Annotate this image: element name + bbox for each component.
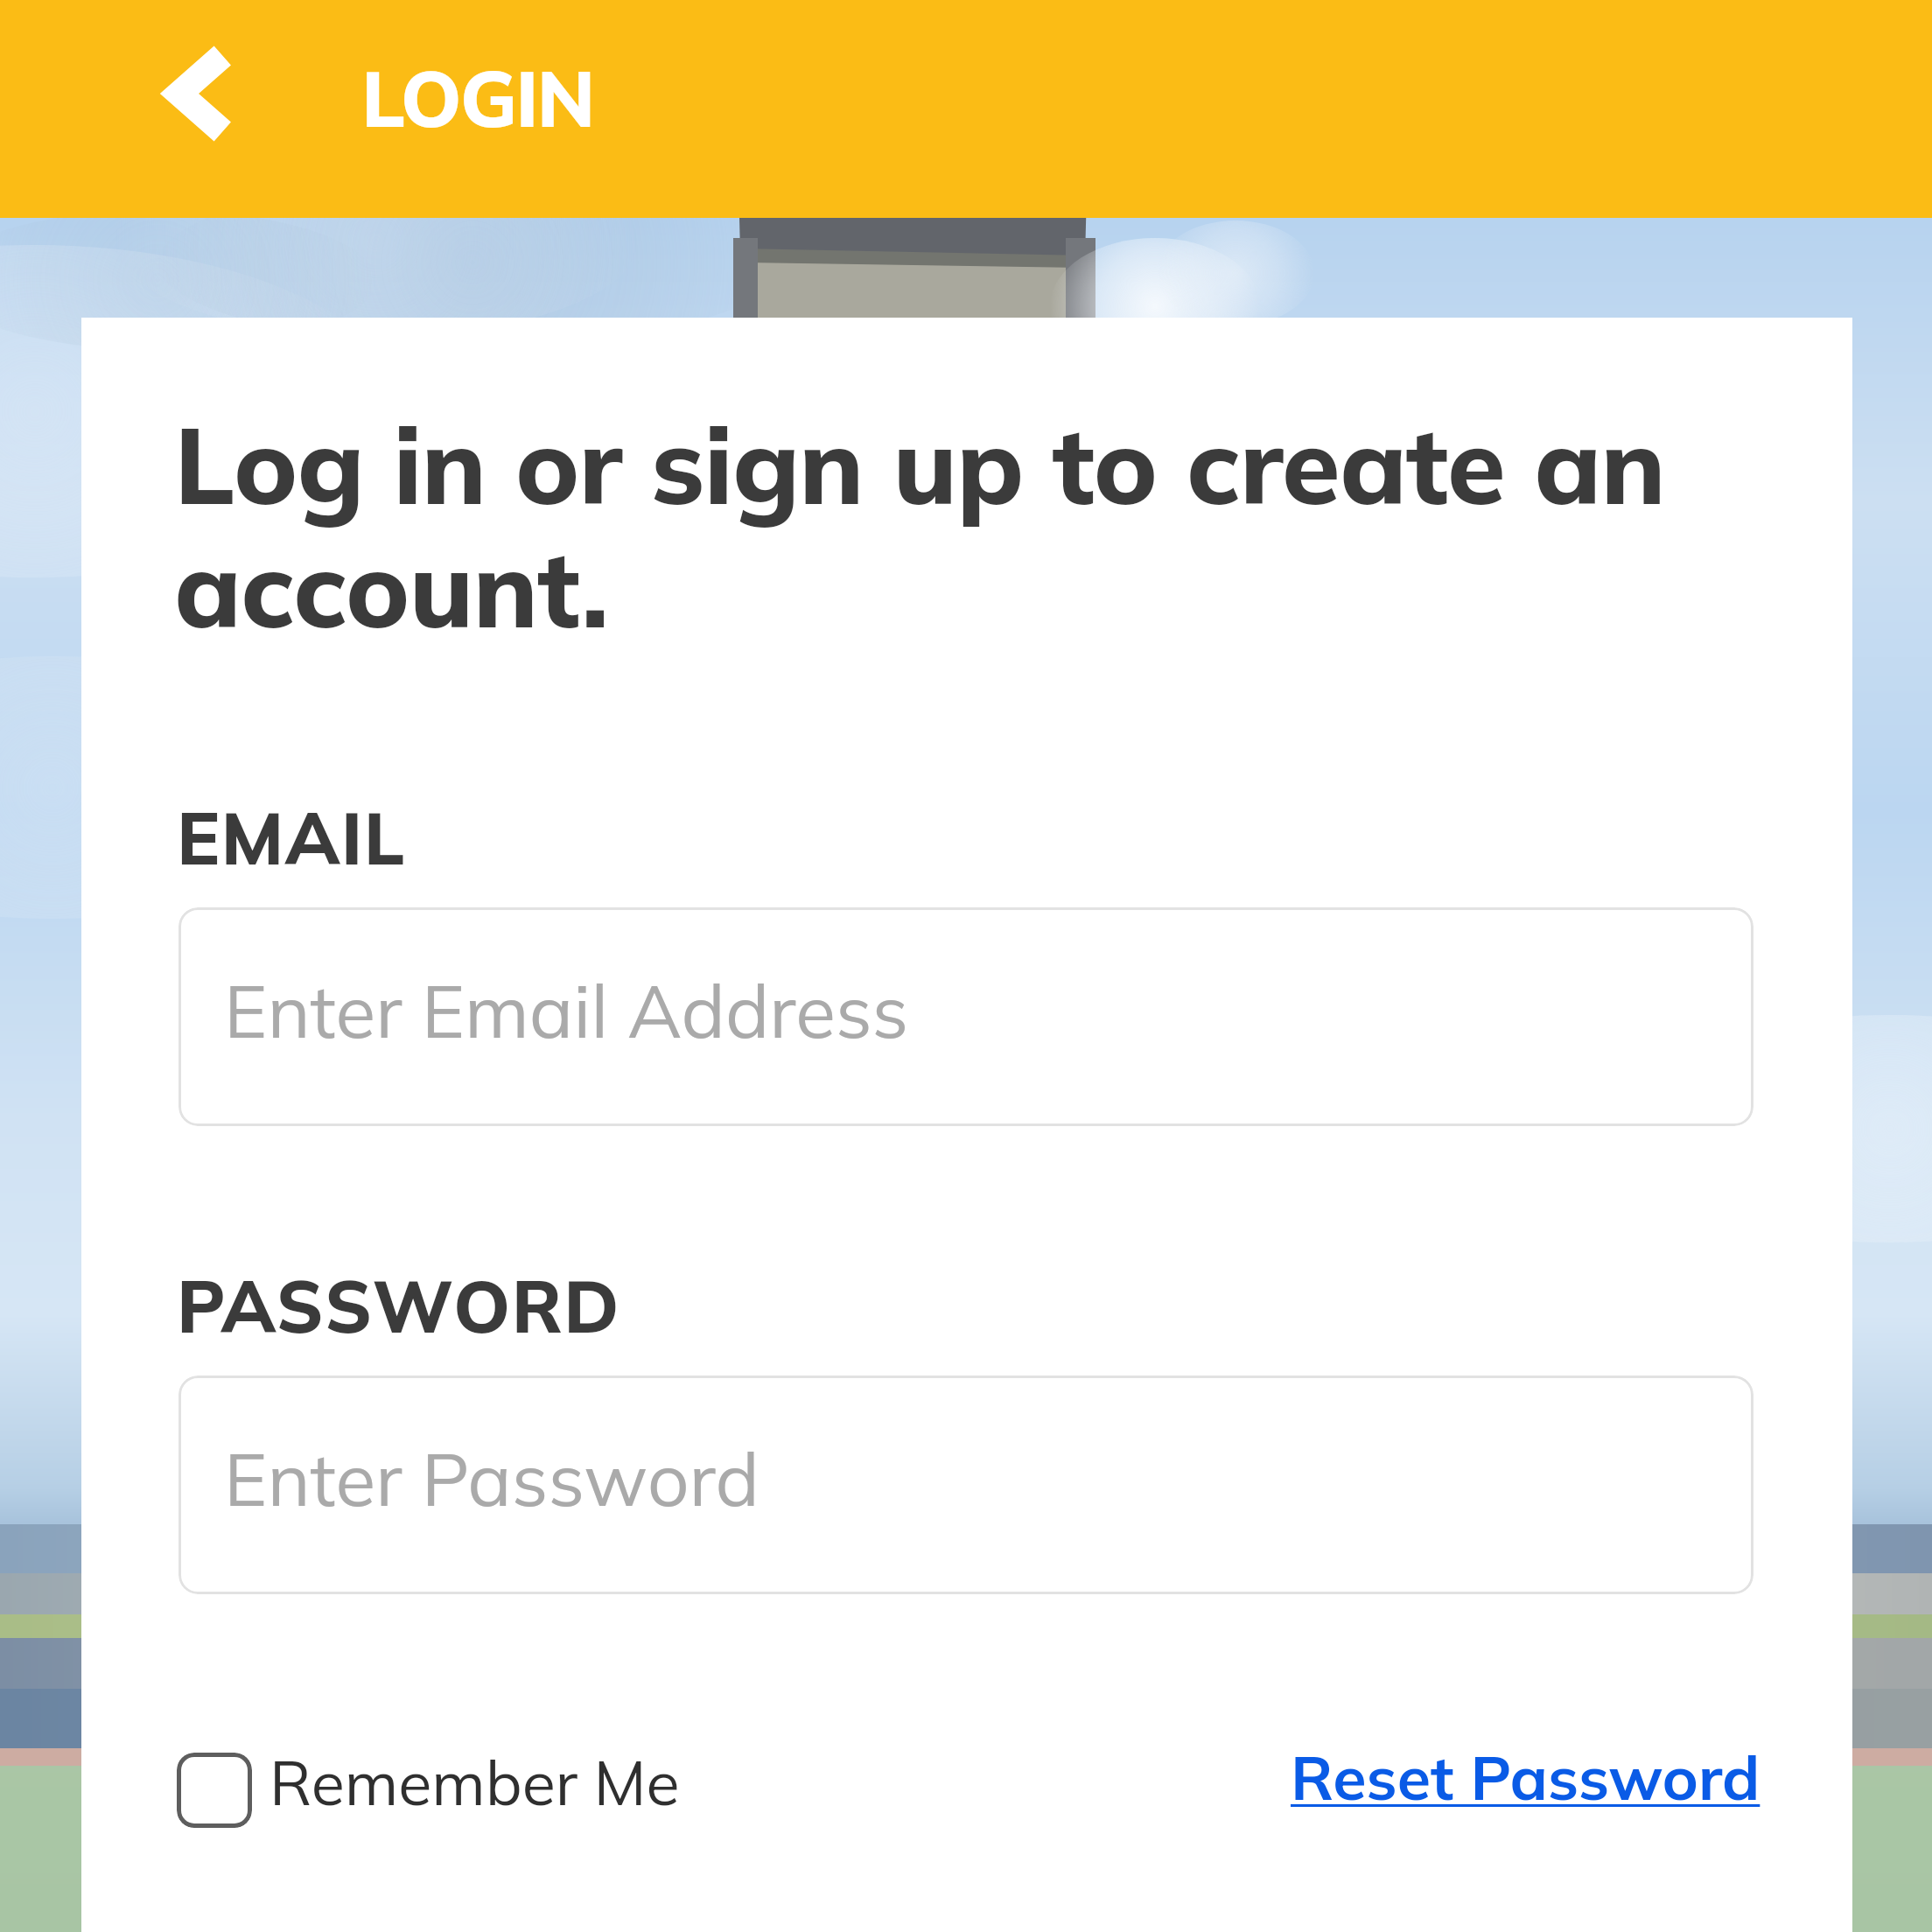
button[interactable]: Remember Me — [171, 1726, 766, 1849]
staticText: PASSWORD — [177, 1261, 620, 1351]
button[interactable]: Back — [153, 37, 267, 150]
button[interactable]: Reset Password — [1291, 1739, 1760, 1816]
button[interactable]: Enter Password — [178, 1375, 1753, 1594]
button[interactable]: Enter Email Address — [178, 907, 1753, 1126]
staticText: Log in or sign up to create an account. — [174, 396, 1758, 654]
staticText: Remember Me — [269, 1744, 680, 1821]
staticText: LOGIN — [361, 50, 594, 146]
staticText: EMAIL — [177, 793, 406, 883]
staticText: Enter Password — [224, 1432, 759, 1524]
staticText: Enter Email Address — [224, 964, 909, 1056]
